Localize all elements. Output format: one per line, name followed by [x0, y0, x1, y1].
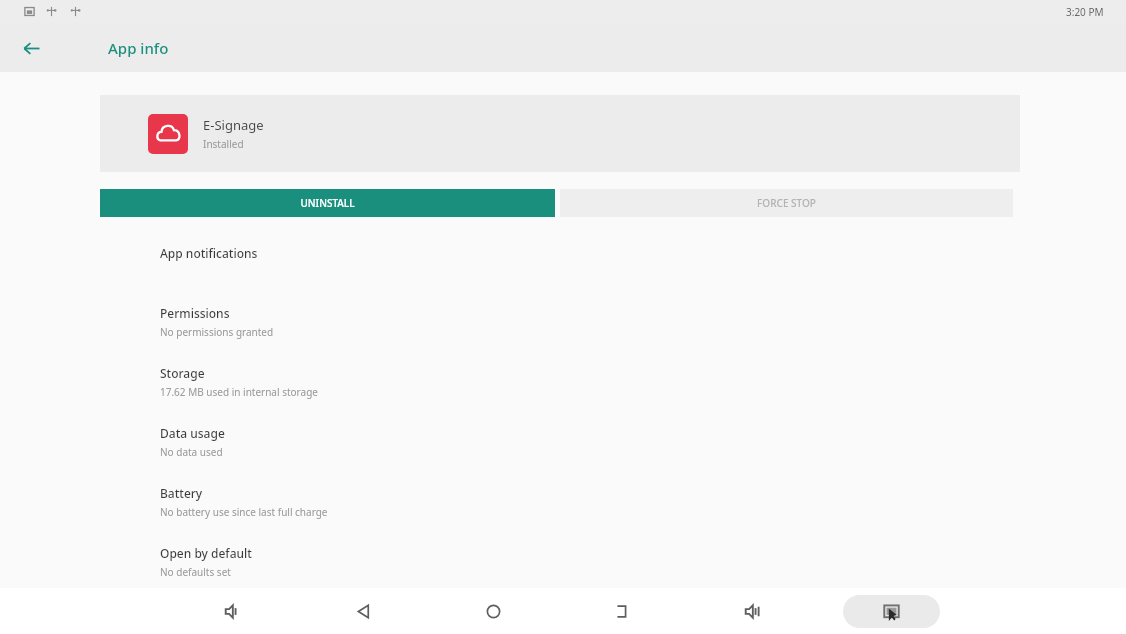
button[interactable]: App notifications [0, 234, 1126, 294]
button[interactable]: Storage [0, 354, 1126, 414]
button[interactable]: Volume up [733, 592, 771, 630]
button[interactable]: Data usage [0, 414, 1126, 474]
staticText: App info [108, 38, 169, 58]
staticText: Open by default [160, 545, 252, 561]
staticText: No data used [160, 445, 223, 459]
button[interactable]: Back [344, 592, 382, 630]
button[interactable]: FORCE STOP [560, 189, 1013, 217]
staticText: Storage [160, 365, 205, 381]
button[interactable]: E-Signage [100, 95, 1020, 172]
staticText: No permissions granted [160, 325, 274, 339]
button[interactable]: UNINSTALL [100, 189, 555, 217]
staticText: 3:20 PM [1066, 5, 1104, 19]
button[interactable]: Open by default [0, 534, 1126, 587]
button[interactable]: Back [14, 31, 48, 65]
staticText: FORCE STOP [757, 196, 816, 210]
button[interactable]: Permissions [0, 294, 1126, 354]
staticText: Permissions [160, 305, 230, 321]
button[interactable]: Battery [0, 474, 1126, 534]
staticText: 17.62 MB used in internal storage [160, 385, 318, 399]
staticText: Data usage [160, 425, 225, 441]
staticText: Battery [160, 485, 203, 501]
staticText: E-Signage [203, 116, 264, 134]
button[interactable]: Home [474, 592, 512, 630]
button[interactable]: Recent apps [602, 592, 640, 630]
staticText: App notifications [160, 245, 258, 261]
button[interactable]: Volume down [213, 592, 251, 630]
button[interactable]: Screenshot [843, 595, 940, 628]
staticText: No battery use since last full charge [160, 505, 328, 519]
staticText: Installed [203, 137, 244, 151]
staticText: UNINSTALL [300, 196, 355, 210]
staticText: No defaults set [160, 565, 231, 579]
